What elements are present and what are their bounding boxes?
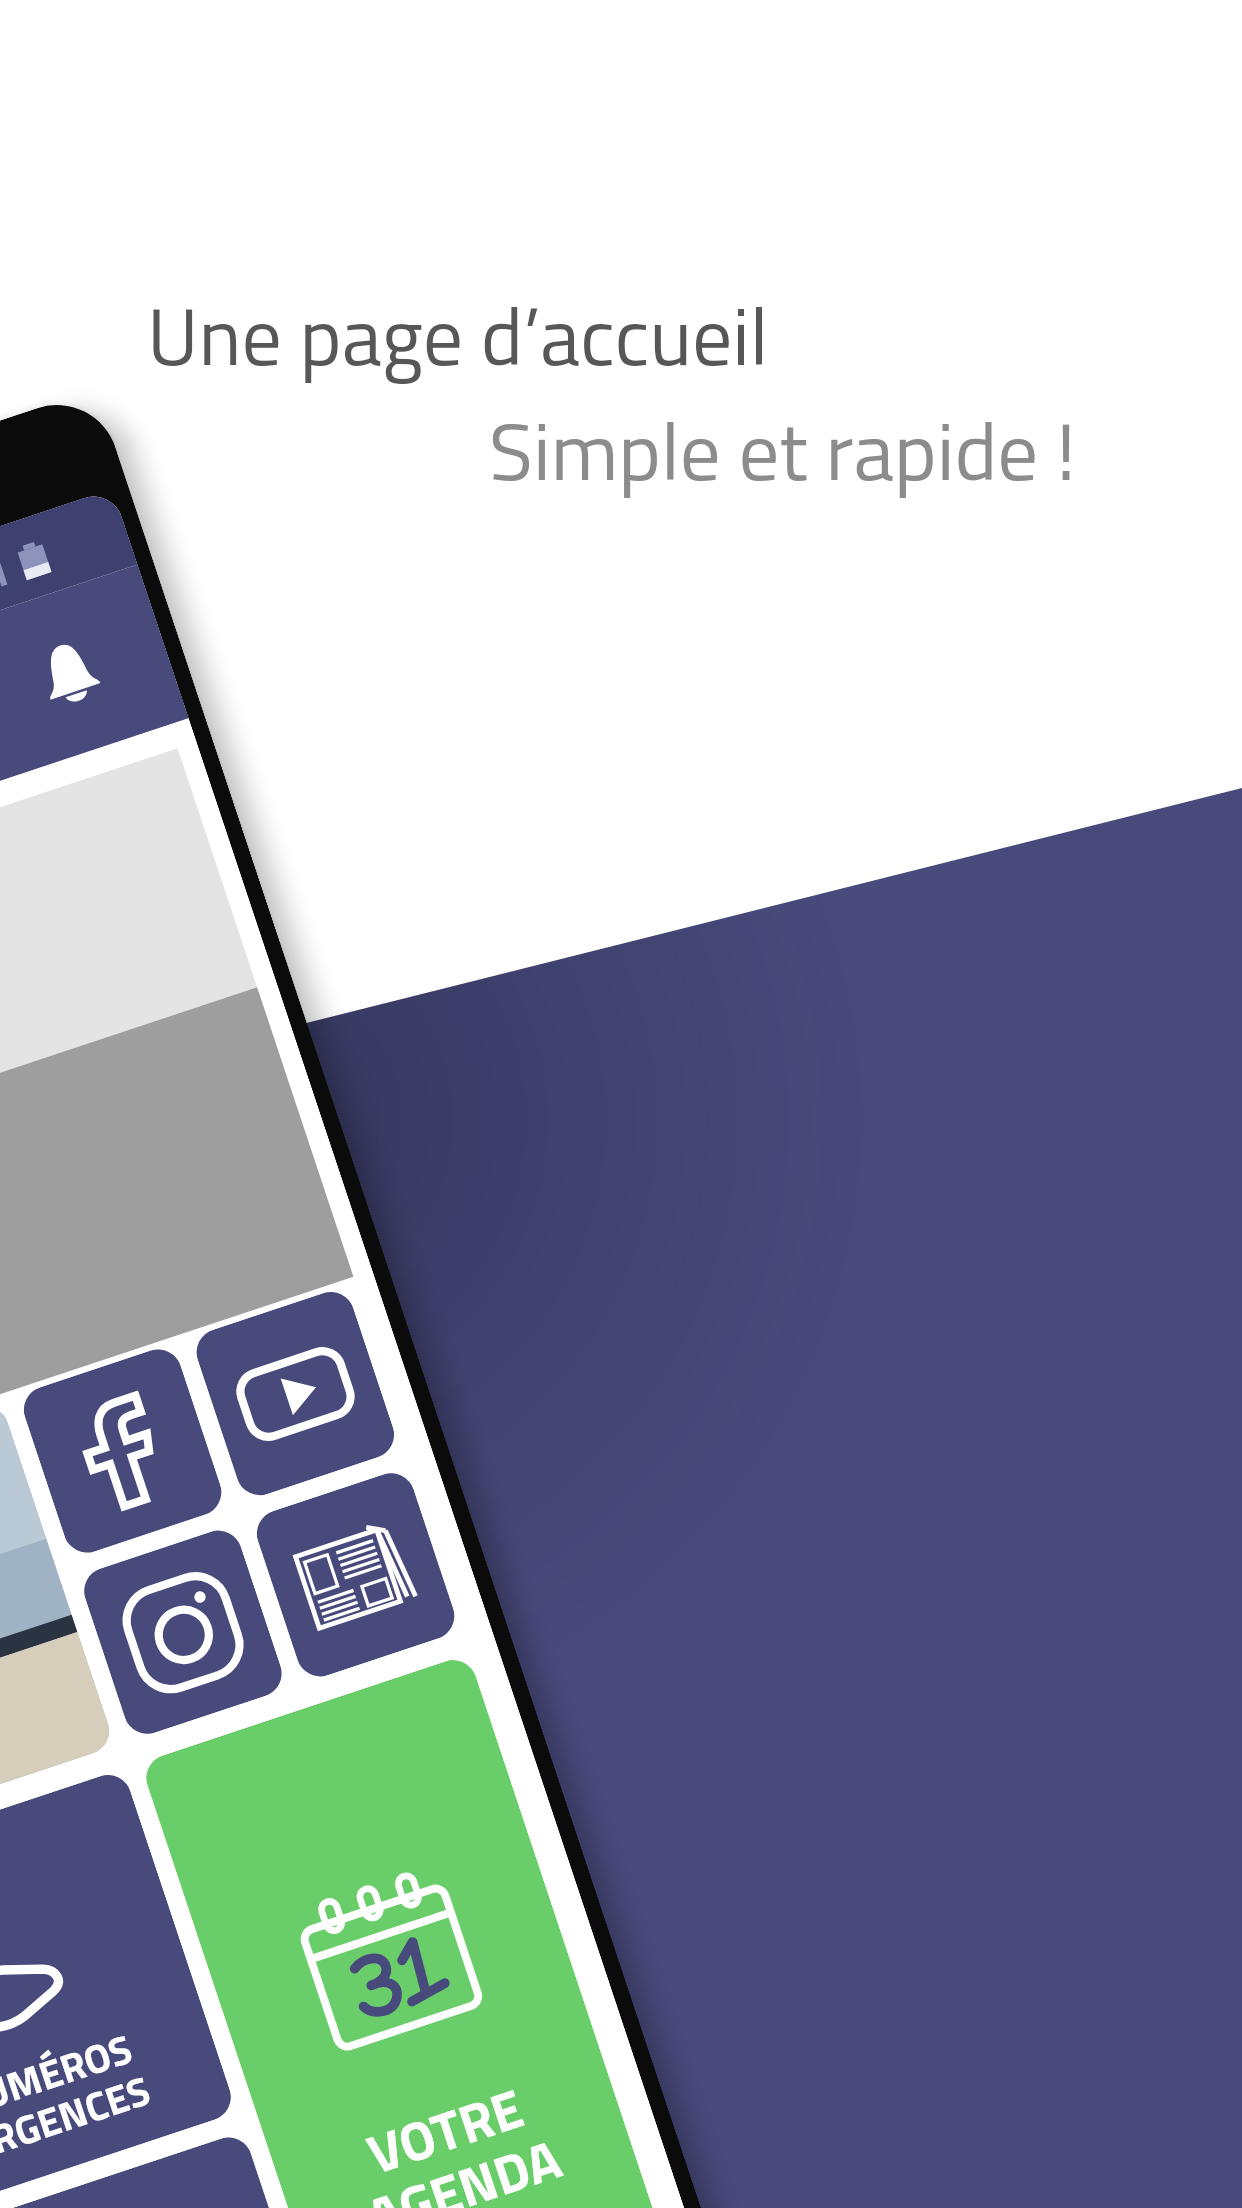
button[interactable]: Facebook xyxy=(17,1343,228,1559)
staticText: VOTRE AGENDA xyxy=(338,2060,571,2208)
button[interactable]: NUMÉROS URGENCES xyxy=(0,1769,237,2208)
button[interactable]: YouTube xyxy=(190,1286,400,1501)
button[interactable]: Plus xyxy=(0,2131,348,2208)
button[interactable]: Actualités xyxy=(250,1467,461,1683)
button[interactable]: Instagram xyxy=(78,1524,288,1740)
staticText: Une page d’accueil xyxy=(147,274,769,396)
button[interactable]: VOTRE AGENDA xyxy=(140,1654,690,2208)
staticText: NUMÉROS URGENCES xyxy=(0,2017,157,2177)
staticText: Simple et rapide ! xyxy=(489,388,1077,511)
button[interactable]: Notifications xyxy=(0,590,151,755)
button[interactable]: Photo xyxy=(0,1400,115,1855)
